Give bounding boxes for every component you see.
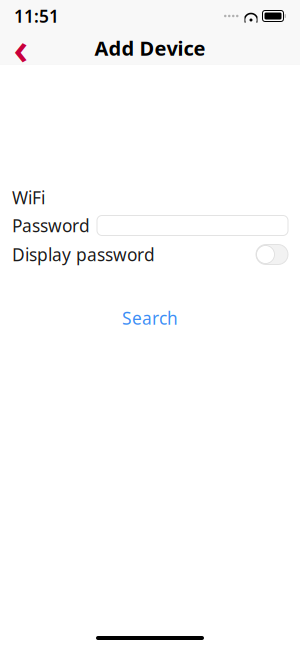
staticText: WiFi — [12, 186, 45, 209]
staticText: Display password — [12, 243, 155, 266]
staticText: Search — [122, 306, 178, 329]
staticText: Add Device — [94, 35, 205, 61]
staticText: 11:51 — [14, 4, 59, 27]
button[interactable]: Search — [106, 301, 194, 334]
staticText: ‹ — [13, 20, 28, 76]
button[interactable]: Back — [4, 32, 38, 64]
button[interactable]: Display password — [256, 244, 288, 264]
staticText: Password — [12, 214, 90, 237]
